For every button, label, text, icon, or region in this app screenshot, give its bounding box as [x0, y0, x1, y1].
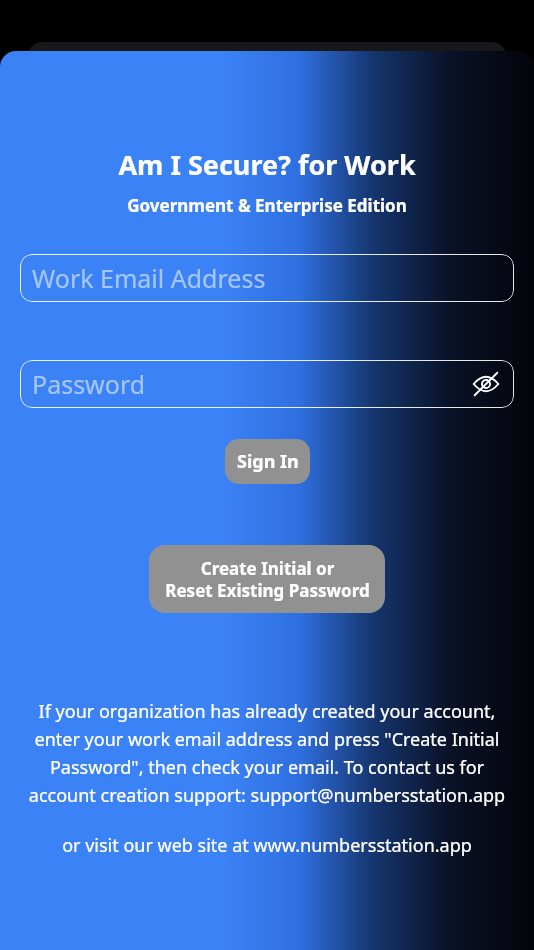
button[interactable]: Sign In	[225, 439, 310, 484]
button[interactable]: Show password	[466, 364, 506, 404]
button[interactable]: Work Email Address	[20, 254, 514, 302]
button[interactable]: Create Initial or Reset Existing Passwor…	[149, 545, 385, 613]
staticText: or visit our web site at www.numbersstat…	[14, 833, 520, 858]
staticText: Work Email Address	[32, 261, 266, 295]
staticText: Am I Secure? for Work	[118, 146, 416, 183]
staticText: Government & Enterprise Edition	[127, 194, 407, 217]
button[interactable]: Password	[20, 360, 514, 408]
staticText: Password	[32, 367, 146, 401]
staticText: Sign In	[237, 449, 299, 474]
staticText: Create Initial or Reset Existing Passwor…	[165, 557, 370, 602]
staticText: If your organization has already created…	[18, 699, 516, 807]
